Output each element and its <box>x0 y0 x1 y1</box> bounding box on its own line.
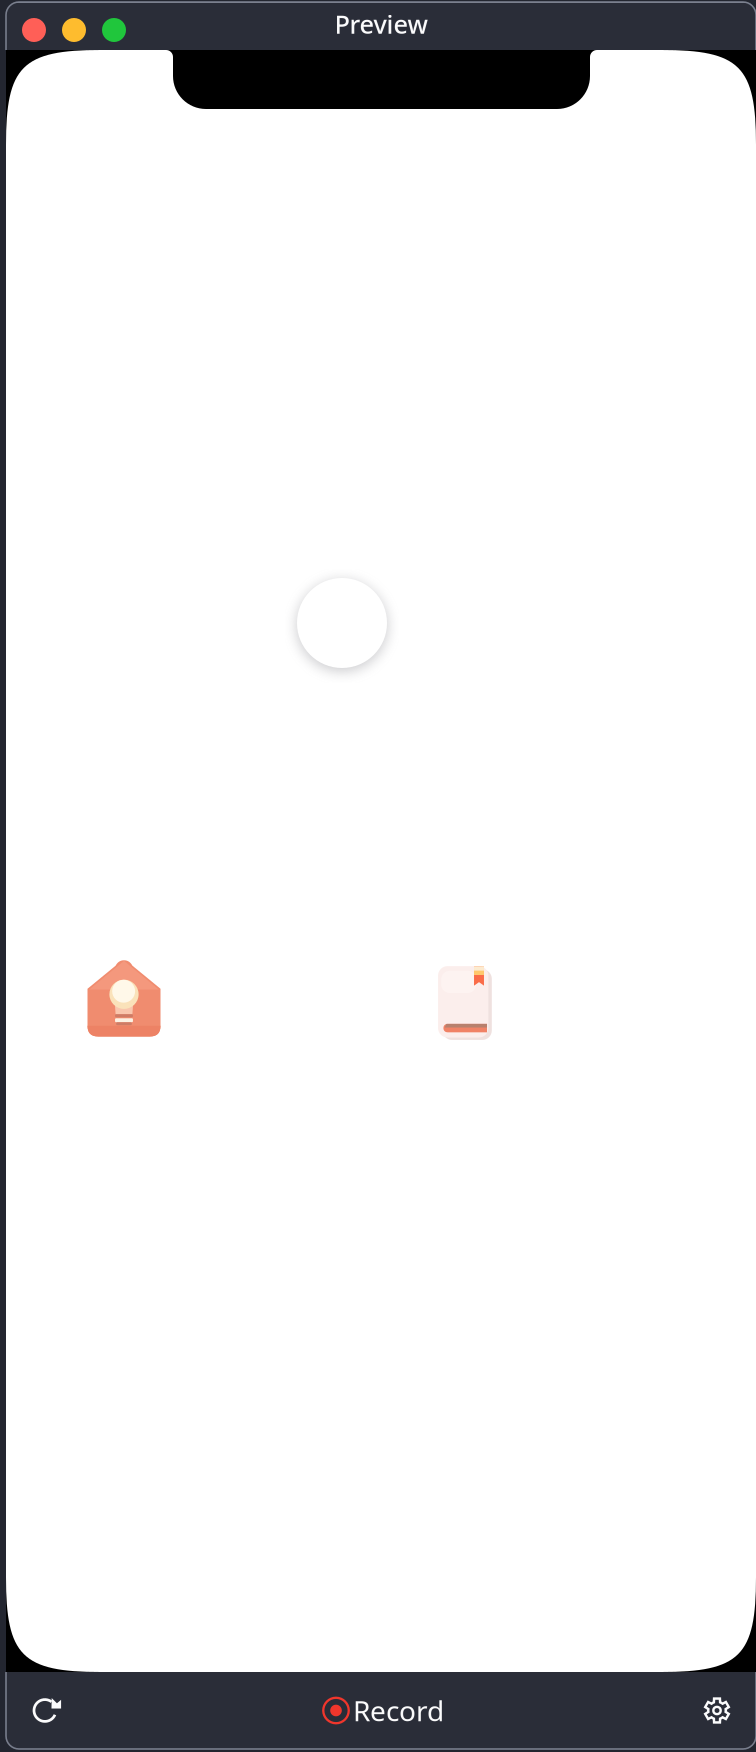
staticText: Preview <box>334 7 427 41</box>
button[interactable]: Settings <box>686 1672 748 1749</box>
staticText: Record <box>353 1692 444 1729</box>
button[interactable]: Record <box>322 1672 444 1749</box>
button[interactable]: Reload <box>16 1672 78 1749</box>
